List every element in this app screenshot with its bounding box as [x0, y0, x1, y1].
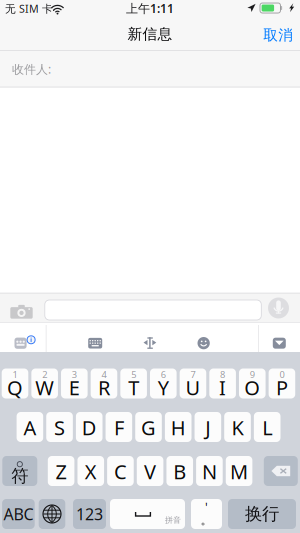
- staticText: I: [219, 374, 226, 401]
- staticText: 123: [76, 503, 103, 525]
- staticText: U: [185, 374, 200, 401]
- staticText: 0: [279, 368, 284, 381]
- button[interactable]: S: [46, 412, 73, 442]
- button[interactable]: 8: [209, 368, 236, 398]
- staticText: 拼音: [165, 515, 181, 525]
- staticText: Y: [158, 374, 169, 401]
- button[interactable]: A: [17, 412, 43, 442]
- button[interactable]: C: [107, 456, 134, 486]
- button[interactable]: K: [224, 412, 251, 442]
- button[interactable]: 5: [120, 368, 147, 398]
- staticText: D: [82, 414, 97, 441]
- staticText: K: [231, 414, 243, 441]
- button[interactable]: G: [135, 412, 162, 442]
- staticText: 8: [220, 368, 225, 381]
- button[interactable]: 1: [2, 368, 28, 398]
- staticText: 上午1:11: [126, 0, 174, 16]
- staticText: 1: [12, 368, 17, 381]
- button[interactable]: App Store: [14, 338, 27, 349]
- staticText: 无 SIM 卡: [5, 1, 53, 16]
- staticText: 5: [131, 368, 136, 381]
- button[interactable]: B: [166, 456, 193, 486]
- staticText: F: [114, 414, 124, 441]
- staticText: 符: [11, 465, 28, 487]
- staticText: W: [35, 374, 54, 401]
- staticText: ABC: [3, 503, 33, 525]
- staticText: 取消: [263, 26, 293, 44]
- button[interactable]: 拼音: [110, 499, 185, 529]
- staticText: 。: [200, 513, 212, 527]
- button[interactable]: V: [137, 456, 163, 486]
- button[interactable]: 123: [73, 499, 106, 529]
- staticText: 7: [190, 368, 195, 381]
- button[interactable]: 符: [2, 456, 37, 486]
- button[interactable]: Camera: [10, 304, 33, 319]
- button[interactable]: X: [77, 456, 104, 486]
- button[interactable]: H: [165, 412, 191, 442]
- button[interactable]: M: [226, 456, 252, 486]
- staticText: 收件人:: [12, 61, 51, 77]
- staticText: 9: [250, 368, 255, 381]
- button[interactable]: [39, 499, 65, 529]
- staticText: N: [202, 458, 217, 485]
- button[interactable]: 3: [61, 368, 88, 398]
- button[interactable]: Handwriting: [143, 337, 157, 348]
- button[interactable]: 6: [150, 368, 177, 398]
- staticText: R: [98, 374, 110, 401]
- button[interactable]: F: [106, 412, 132, 442]
- staticText: 2: [42, 368, 47, 381]
- staticText: C: [114, 458, 127, 485]
- staticText: ': [205, 499, 208, 515]
- button[interactable]: Keyboard: [88, 338, 102, 348]
- button[interactable]: 换行: [228, 499, 296, 529]
- staticText: B: [173, 458, 186, 485]
- button[interactable]: ': [191, 499, 222, 529]
- staticText: O: [244, 374, 260, 401]
- button[interactable]: 0: [269, 368, 295, 398]
- button[interactable]: Emoji: [197, 337, 210, 349]
- button[interactable]: Z: [48, 456, 74, 486]
- staticText: X: [85, 458, 97, 485]
- staticText: 4: [101, 368, 106, 381]
- staticText: Z: [56, 458, 67, 485]
- button[interactable]: 4: [91, 368, 117, 398]
- staticText: 3: [72, 368, 77, 381]
- button[interactable]: ABC: [2, 499, 35, 529]
- button[interactable]: Messages: [273, 338, 286, 349]
- staticText: 新信息: [127, 25, 172, 43]
- button[interactable]: 2: [31, 368, 58, 398]
- button[interactable]: J: [195, 412, 221, 442]
- staticText: V: [144, 458, 156, 485]
- button[interactable]: 取消: [254, 22, 300, 48]
- staticText: A: [23, 414, 36, 441]
- staticText: G: [141, 414, 156, 441]
- staticText: M: [230, 458, 248, 485]
- staticText: 6: [161, 368, 166, 381]
- staticText: E: [69, 374, 80, 401]
- button[interactable]: L: [254, 412, 280, 442]
- button[interactable]: 9: [239, 368, 266, 398]
- staticText: S: [54, 414, 65, 441]
- staticText: T: [128, 374, 139, 401]
- staticText: P: [276, 374, 288, 401]
- button[interactable]: N: [196, 456, 223, 486]
- button[interactable]: Dictate: [268, 297, 289, 318]
- staticText: Q: [7, 374, 23, 401]
- button[interactable]: 7: [180, 368, 206, 398]
- staticText: H: [171, 414, 186, 441]
- button[interactable]: D: [76, 412, 102, 442]
- staticText: 换行: [245, 503, 279, 525]
- staticText: J: [205, 414, 210, 441]
- button[interactable]: [264, 456, 298, 486]
- staticText: L: [262, 414, 272, 441]
